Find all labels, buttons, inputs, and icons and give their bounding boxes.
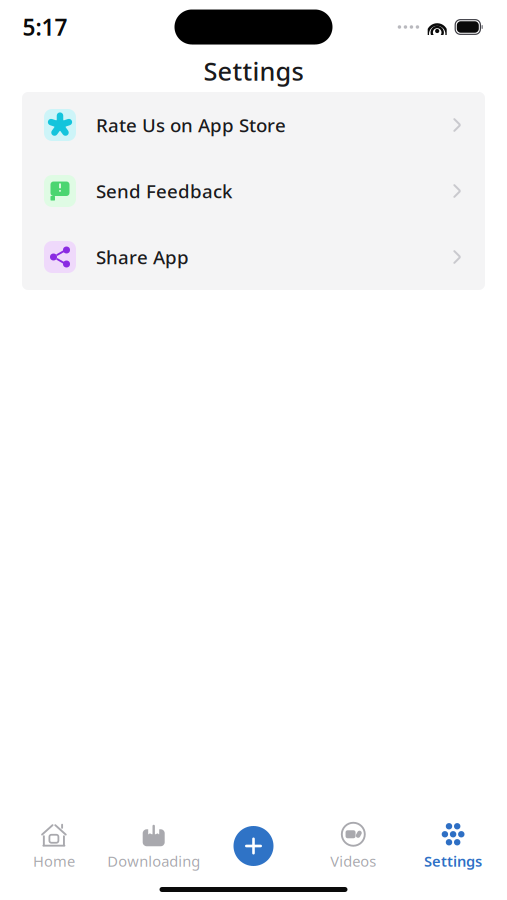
button[interactable]: Videos [303, 817, 403, 875]
staticText: Rate Us on App Store [96, 113, 286, 137]
staticText: Home [33, 851, 75, 871]
staticText: Send Feedback [96, 179, 232, 203]
button[interactable]: Send Feedback [22, 158, 485, 224]
button[interactable]: Settings [403, 817, 503, 875]
staticText: 5:17 [22, 12, 67, 42]
button[interactable]: Downloading [104, 817, 204, 875]
button[interactable]: Share App [22, 224, 485, 290]
staticText: Videos [330, 851, 376, 871]
button[interactable]: Rate Us on App Store [22, 92, 485, 158]
staticText: Settings [424, 851, 482, 871]
button[interactable]: Add [204, 817, 303, 875]
button[interactable]: Home [4, 817, 104, 875]
staticText: Share App [96, 245, 189, 269]
staticText: Downloading [107, 851, 200, 871]
staticText: Settings [203, 54, 303, 88]
